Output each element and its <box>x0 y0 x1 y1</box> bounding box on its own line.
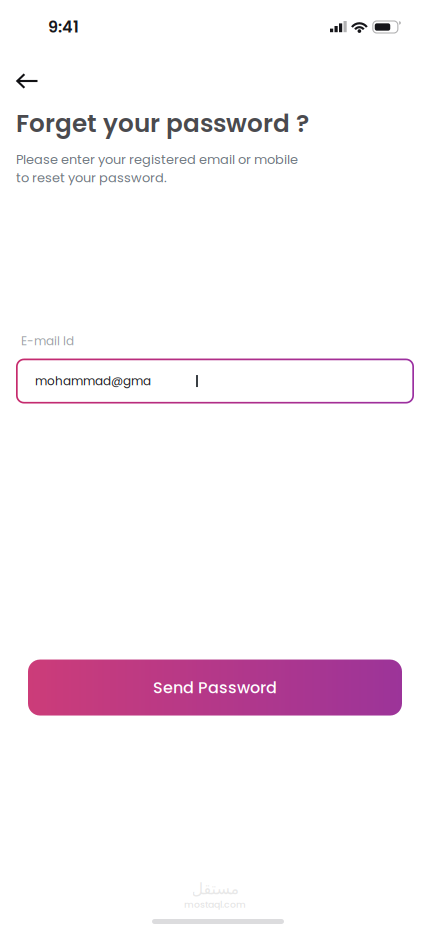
staticText: Send Password <box>153 676 277 699</box>
staticText: Forget your password ? <box>16 106 309 140</box>
staticText: mostaql.com <box>184 898 246 911</box>
button[interactable]: mohammad@gma <box>16 358 414 403</box>
staticText: mohammad@gma <box>35 373 151 389</box>
button[interactable]: Back <box>16 54 60 92</box>
button[interactable]: Send Password <box>28 659 402 715</box>
staticText: Please enter your registered email or mo… <box>16 150 298 187</box>
staticText: مستقل <box>191 879 239 898</box>
staticText: E-mail Id <box>21 333 74 349</box>
staticText: 9:41 <box>48 16 79 38</box>
